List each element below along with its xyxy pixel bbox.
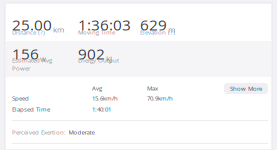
staticText: Max xyxy=(147,84,158,92)
staticText: kJ xyxy=(106,53,112,64)
staticText: Distance (?) xyxy=(12,28,45,36)
staticText: 70.9km/h xyxy=(147,94,173,102)
staticText: 902 xyxy=(78,43,105,64)
staticText: 15.6km/h xyxy=(92,94,118,102)
button[interactable]: Show More xyxy=(224,83,268,94)
staticText: Power xyxy=(12,64,30,72)
staticText: Perceived Exertion: xyxy=(12,128,66,136)
staticText: 25.00 xyxy=(12,14,52,35)
staticText: Moderate xyxy=(68,128,94,136)
staticText: 1:36:03 xyxy=(78,14,131,35)
staticText: Avg xyxy=(92,84,102,92)
staticText: Moving Time xyxy=(78,28,115,36)
staticText: km xyxy=(53,24,64,35)
staticText: Show More xyxy=(230,84,262,93)
staticText: Energy Output xyxy=(78,56,119,64)
staticText: Speed xyxy=(12,94,29,102)
staticText: Elevation (?) xyxy=(140,28,175,36)
staticText: w xyxy=(40,53,46,64)
staticText: m xyxy=(168,24,175,35)
staticText: 156 xyxy=(12,43,39,64)
staticText: Estimated Avg xyxy=(12,56,52,64)
staticText: 1:40:01 xyxy=(92,105,111,113)
staticText: 629 xyxy=(140,14,167,35)
staticText: Elapsed Time xyxy=(12,105,50,113)
